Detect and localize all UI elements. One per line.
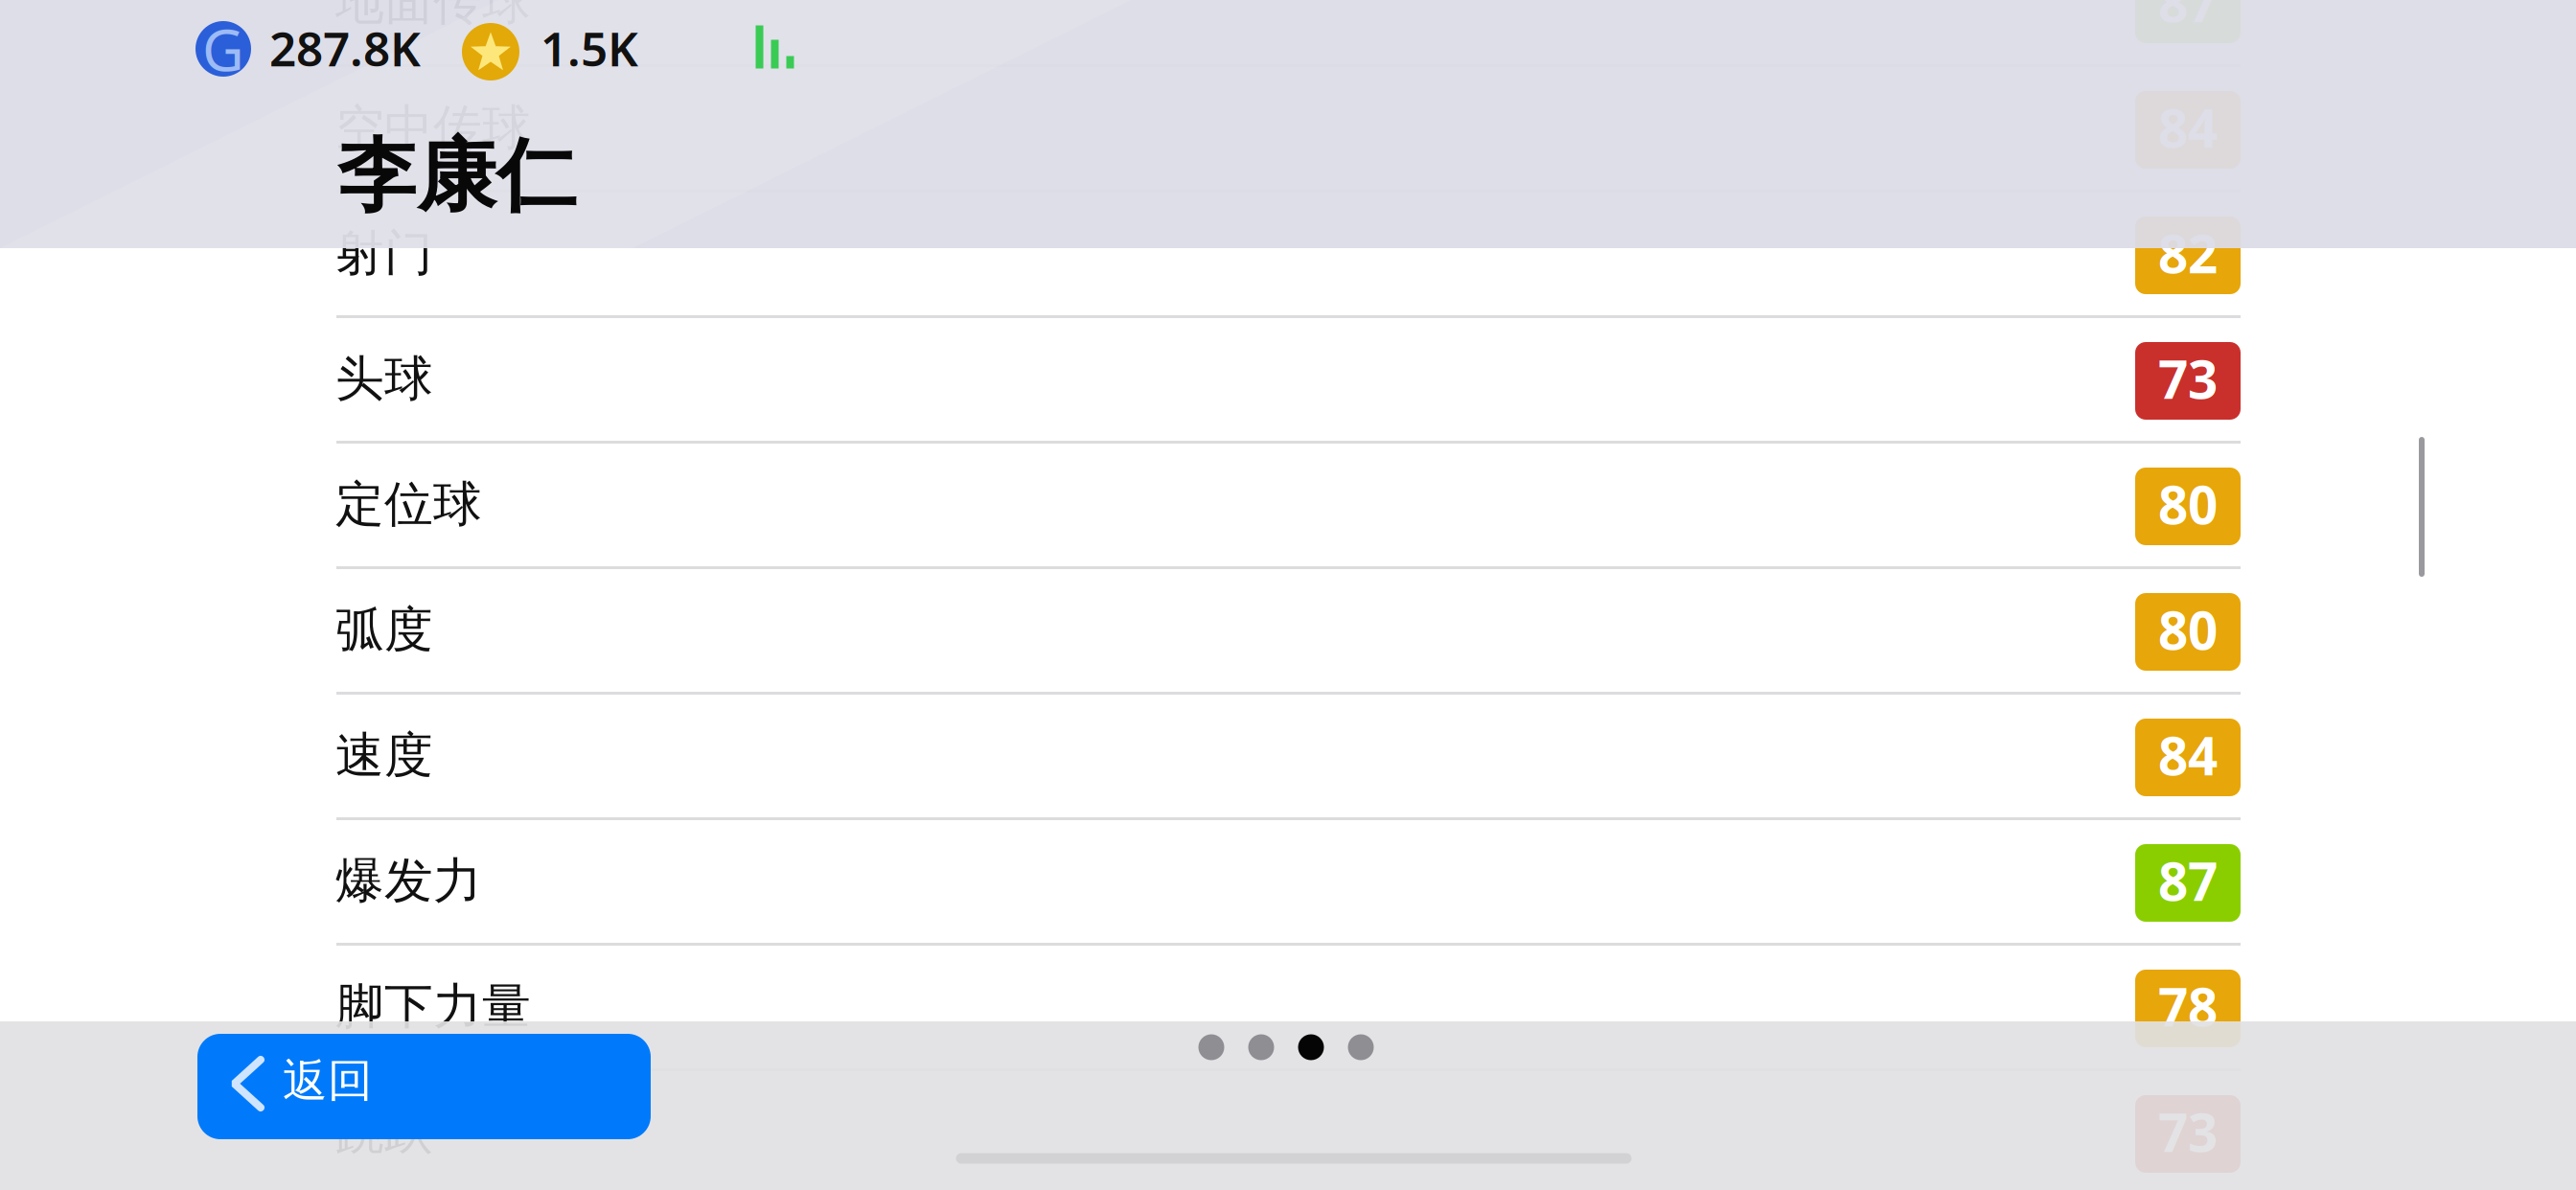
staticText: 速度 bbox=[335, 726, 433, 785]
staticText: 73 bbox=[2158, 344, 2218, 413]
staticText: 80 bbox=[2158, 469, 2218, 539]
staticText: 73 bbox=[2158, 1097, 2218, 1166]
staticText: 李康仁 bbox=[337, 128, 576, 225]
staticText: 1.5K bbox=[540, 16, 638, 79]
staticText: 78 bbox=[2158, 971, 2218, 1041]
staticText: 84 bbox=[2158, 720, 2218, 790]
staticText: 空中传球 bbox=[335, 98, 531, 158]
staticText: 射门 bbox=[335, 224, 433, 283]
staticText: 80 bbox=[2158, 595, 2218, 664]
staticText: 定位球 bbox=[335, 475, 482, 534]
staticText: 287.8K bbox=[269, 16, 421, 79]
button[interactable]: 返回 bbox=[197, 1034, 651, 1139]
staticText: 跳跃 bbox=[335, 1102, 433, 1162]
staticText: G bbox=[202, 11, 244, 87]
staticText: 返回 bbox=[283, 1053, 373, 1108]
staticText: 82 bbox=[2158, 218, 2218, 288]
staticText: 爆发力 bbox=[335, 851, 482, 911]
staticText: 87 bbox=[2158, 846, 2218, 915]
staticText: 头球 bbox=[335, 349, 433, 409]
staticText: 87 bbox=[2158, 0, 2218, 37]
staticText: 脚下力量 bbox=[335, 977, 531, 1036]
staticText: 84 bbox=[2158, 93, 2218, 162]
staticText: 弧度 bbox=[335, 600, 433, 660]
staticText: 地面传球 bbox=[335, 0, 531, 32]
